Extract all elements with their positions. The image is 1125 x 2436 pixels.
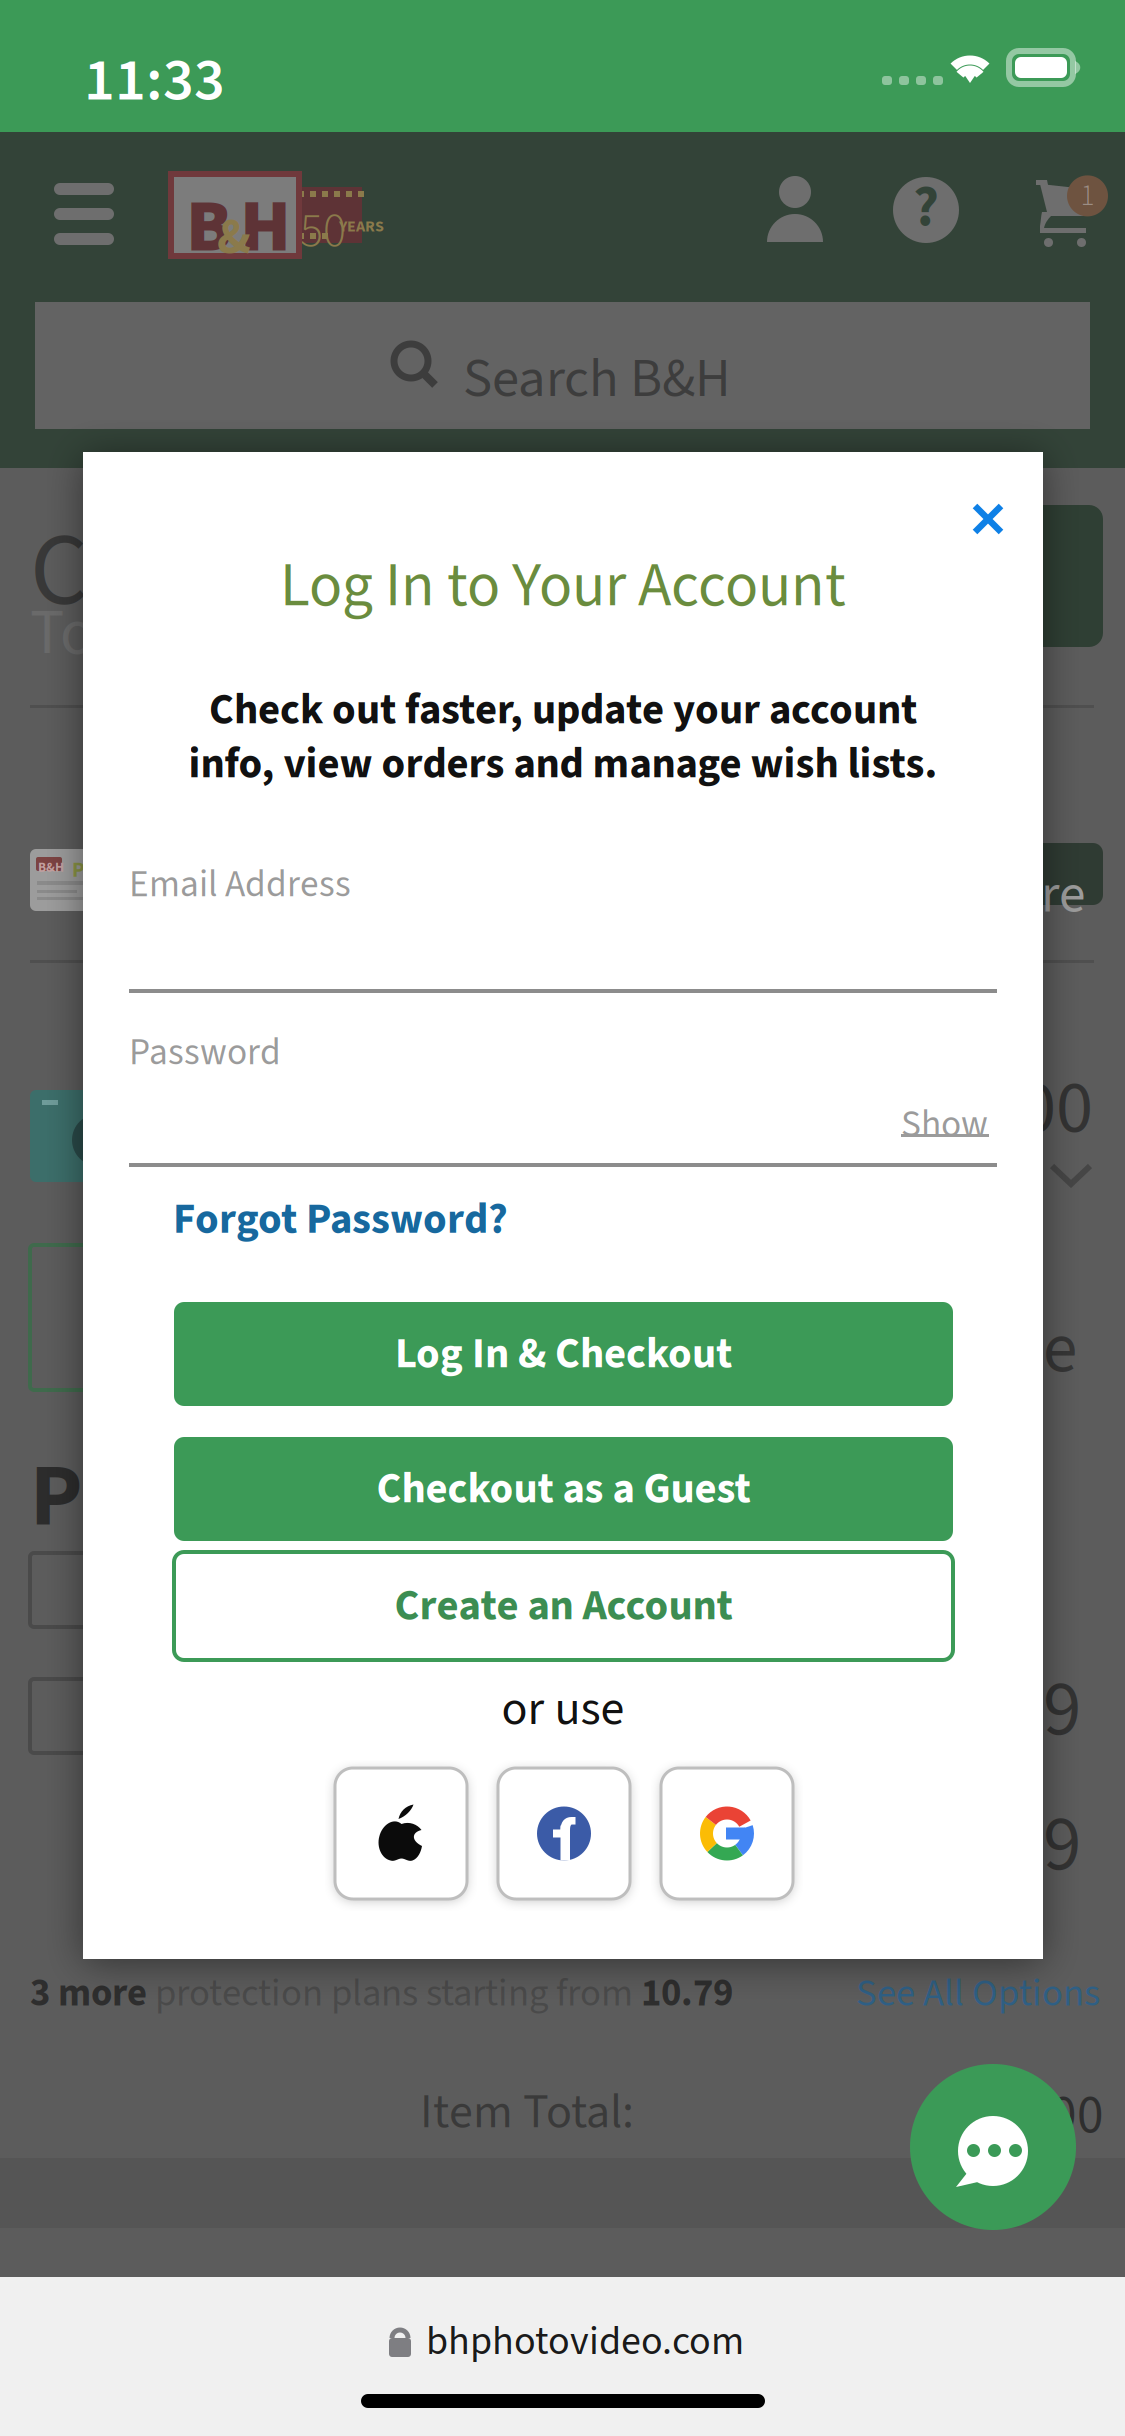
staticText: 9 bbox=[1043, 1655, 1081, 1765]
staticText: Item Total: bbox=[420, 2078, 634, 2146]
button[interactable]: Sign in with Facebook bbox=[498, 1768, 630, 1899]
staticText: 1 bbox=[1080, 175, 1094, 217]
staticText: Show bbox=[901, 1098, 988, 1151]
button[interactable]: Sign in with Apple bbox=[335, 1768, 467, 1899]
staticText: or use bbox=[501, 1675, 624, 1743]
staticText: 50 bbox=[300, 197, 346, 265]
staticText: Total … bbox=[30, 588, 236, 679]
button[interactable]: B and H home bbox=[0, 0, 200, 90]
staticText: 10.79 bbox=[641, 1966, 733, 2021]
staticText: YEARS bbox=[339, 215, 384, 238]
staticText: Checkout as a Guest bbox=[376, 1459, 750, 1519]
staticText: 00 bbox=[1050, 2078, 1104, 2154]
staticText: Protection … bbox=[30, 1435, 542, 1560]
staticText: .00 bbox=[1000, 1055, 1093, 1161]
staticText: Cart bbox=[30, 500, 208, 644]
staticText: B&H bbox=[38, 858, 64, 877]
staticText: Check out faster, update your account bbox=[209, 680, 917, 740]
staticText: H bbox=[240, 174, 291, 280]
staticText: e bbox=[1043, 1300, 1077, 1399]
staticText: info, view orders and manage wish lists. bbox=[188, 734, 937, 794]
button[interactable]: Search B&H bbox=[0, 0, 1055, 127]
staticText: Log In to Your Account bbox=[280, 542, 846, 630]
staticText: Password bbox=[129, 1026, 281, 1079]
staticText: Log In & Checkout bbox=[395, 1324, 732, 1384]
staticText: & bbox=[217, 201, 251, 273]
staticText: See All Options bbox=[856, 1966, 1100, 2021]
staticText: Forgot Password? bbox=[173, 1189, 508, 1250]
button[interactable]: Sign in with Google bbox=[661, 1768, 793, 1899]
staticText: Pay bbox=[72, 855, 106, 885]
staticText: re bbox=[1041, 857, 1085, 933]
staticText: Email Address bbox=[129, 858, 351, 911]
staticText: 3 more bbox=[30, 1966, 147, 2021]
staticText: ? bbox=[913, 168, 939, 248]
staticText: Search B&H bbox=[463, 340, 731, 418]
staticText: Create an Account bbox=[394, 1576, 732, 1636]
staticText: bhphotovideo.com bbox=[426, 2313, 744, 2370]
staticText: 9 bbox=[1043, 1790, 1081, 1900]
staticText: 11:33 bbox=[84, 38, 225, 123]
staticText: protection plans starting from bbox=[147, 1966, 641, 2021]
staticText: B bbox=[186, 174, 232, 280]
